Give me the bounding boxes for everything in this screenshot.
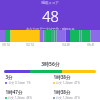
staticText: あなたのデータは平均・睡眠不足 <box>26 27 75 30</box>
staticText: 目安 0-1時間 1% <box>8 81 31 85</box>
staticText: 1時38分 <box>53 74 71 80</box>
staticText: 睡眠スコア <box>41 1 59 5</box>
staticText: 3分 <box>5 74 13 80</box>
staticText: 48 <box>42 6 59 26</box>
staticText: 04:28 <box>62 43 70 47</box>
staticText: 目安 1-2時間 45% <box>8 96 32 100</box>
staticText: 1時38分 <box>53 89 71 95</box>
staticText: 目安 1-2時間 41% <box>56 96 80 100</box>
staticText: 3時56分 <box>41 61 60 68</box>
staticText: 00:14 <box>2 43 10 47</box>
staticText: 1時47分 <box>5 89 23 95</box>
staticText: 目安 1-2時間 41% <box>56 81 80 85</box>
staticText: 06:41 <box>87 43 95 47</box>
staticText: 02:14 <box>26 43 34 47</box>
